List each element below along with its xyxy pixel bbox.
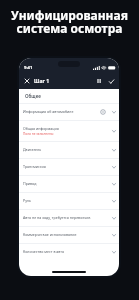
staticText: Коммерческое использование — [23, 232, 77, 237]
staticText: Поля не заполнены — [23, 132, 54, 136]
staticText: Руль — [23, 198, 31, 203]
staticText: Информация об автомобиле — [23, 109, 74, 114]
staticText: Авто не на ходу, требуется перевозчик — [23, 215, 91, 220]
button[interactable]: Закрыть — [23, 77, 31, 85]
button[interactable]: Пауза — [95, 77, 103, 85]
button[interactable]: Авто не на ходу, требуется перевозчик — [19, 209, 119, 226]
button[interactable]: Трансмиссия — [19, 158, 119, 175]
staticText: Трансмиссия — [23, 164, 46, 169]
staticText: Общая информация — [23, 126, 59, 131]
button[interactable]: Количество мест в авто — [19, 243, 119, 260]
staticText: Двигатель — [23, 147, 42, 152]
button[interactable]: Руль — [19, 192, 119, 209]
button[interactable]: Двигатель — [19, 141, 119, 158]
staticText: Общее — [25, 93, 41, 99]
staticText: 9:41 — [24, 65, 33, 71]
button[interactable]: Готово — [107, 77, 115, 85]
button[interactable]: Коммерческое использование — [19, 226, 119, 243]
button[interactable]: Информация об автомобиле — [19, 103, 119, 120]
staticText: Унифицированная система осмотра — [6, 7, 133, 37]
button[interactable]: Привод — [19, 175, 119, 192]
staticText: Привод — [23, 181, 37, 186]
button[interactable]: Общая информация — [19, 120, 119, 141]
staticText: Шаг 1 — [34, 77, 50, 84]
staticText: Количество мест в авто — [23, 249, 65, 254]
